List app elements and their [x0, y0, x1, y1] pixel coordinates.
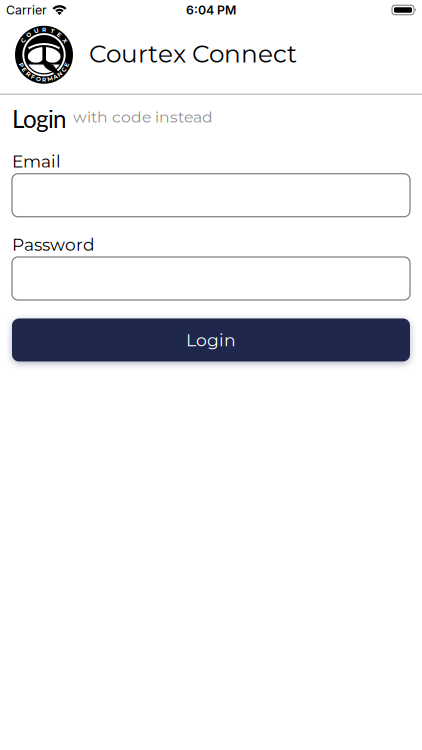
button[interactable]: Email — [12, 174, 410, 217]
staticText: C — [62, 66, 66, 73]
staticText: U — [34, 28, 38, 34]
staticText: R — [42, 76, 46, 83]
staticText: F — [31, 74, 35, 80]
staticText: P — [19, 61, 23, 68]
staticText: Carrier — [6, 3, 47, 17]
staticText: T — [50, 28, 53, 34]
staticText: A — [53, 74, 57, 80]
staticText: R — [26, 71, 30, 77]
staticText: E — [22, 66, 26, 73]
staticText: with code instead — [73, 107, 213, 126]
staticText: X — [63, 37, 67, 44]
staticText: 6:04 PM — [186, 3, 236, 17]
staticText: Password — [12, 234, 95, 255]
staticText: O — [36, 76, 41, 82]
button[interactable]: Login — [12, 318, 410, 361]
staticText: E — [65, 61, 69, 68]
staticText: R — [42, 26, 46, 33]
staticText: Login — [186, 329, 236, 350]
staticText: E — [57, 31, 61, 38]
button[interactable]: Password — [12, 257, 410, 300]
staticText: Courtex Connect — [89, 39, 297, 69]
staticText: M — [47, 76, 52, 82]
button[interactable]: with code instead — [73, 109, 213, 128]
staticText: O — [26, 31, 31, 38]
staticText: Email — [12, 151, 61, 172]
staticText: N — [57, 71, 62, 77]
staticText: C — [21, 37, 25, 44]
staticText: Login — [12, 104, 67, 133]
